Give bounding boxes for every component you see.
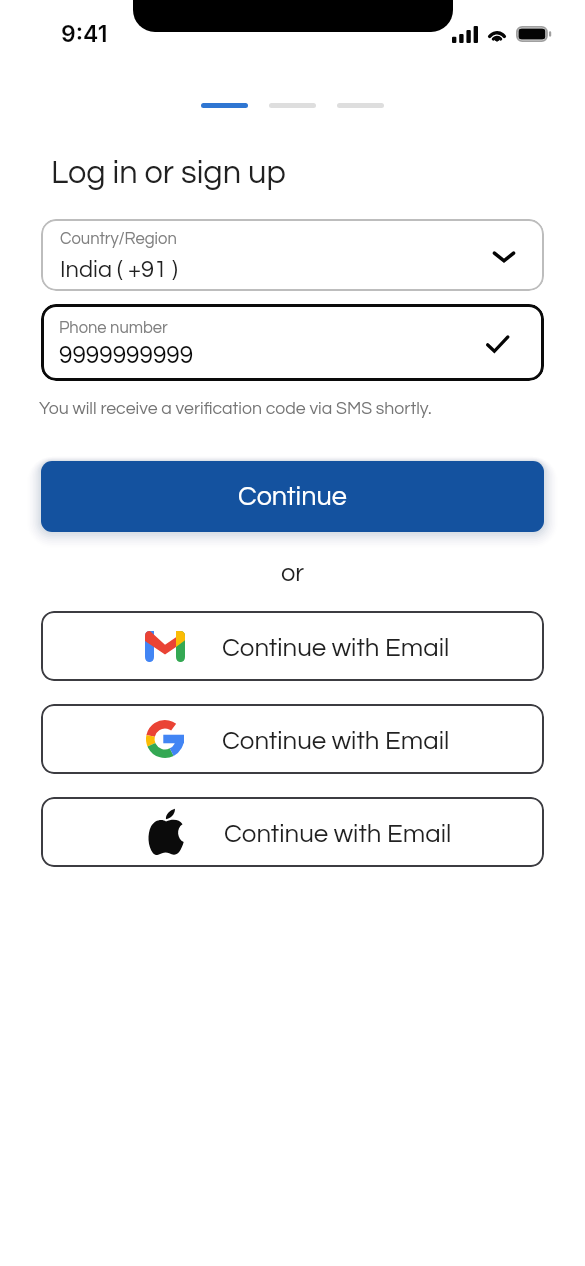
staticText: 9999999999 — [59, 343, 194, 368]
button[interactable]: Continue with Email — [41, 611, 544, 681]
staticText: You will receive a verification code via… — [39, 399, 432, 417]
staticText: India ( +91 ) — [60, 258, 178, 282]
staticText: Country/Region — [60, 230, 177, 247]
button[interactable]: Continue with Email — [41, 704, 544, 774]
button[interactable]: Phone number — [41, 304, 544, 381]
staticText: Continue with Email — [222, 635, 450, 662]
staticText: Continue with Email — [224, 821, 452, 848]
other: Select country — [492, 244, 516, 268]
button[interactable]: Country/Region — [41, 219, 544, 291]
staticText: Continue — [238, 483, 347, 511]
staticText: or — [0, 560, 585, 586]
button[interactable]: Continue with Email — [41, 797, 544, 867]
other: Valid — [485, 331, 511, 357]
staticText: 9:41 — [61, 20, 108, 48]
staticText: Log in or sign up — [51, 156, 286, 189]
button[interactable]: Continue — [41, 461, 544, 532]
staticText: Continue with Email — [222, 728, 450, 755]
staticText: Phone number — [59, 319, 168, 336]
